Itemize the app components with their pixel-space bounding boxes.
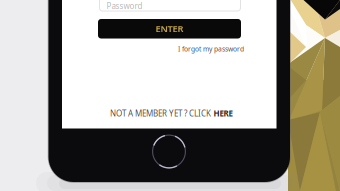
staticText: I forgot my password [178,44,244,53]
staticText: HERE [213,108,232,119]
staticText: Password [106,0,142,11]
button[interactable]: NOT A MEMBER YET ? CLICK [110,108,232,119]
staticText: NOT A MEMBER YET ? CLICK [110,108,211,119]
button[interactable]: ENTER [98,19,241,38]
staticText: ENTER [155,23,183,35]
button[interactable]: I forgot my password [178,44,244,53]
